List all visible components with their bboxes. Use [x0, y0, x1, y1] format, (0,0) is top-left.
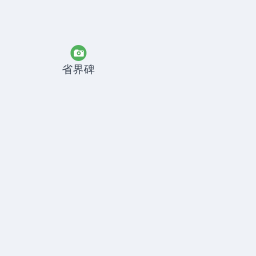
- button[interactable]: 省界碑: [62, 45, 95, 76]
- staticText: 省界碑: [62, 63, 95, 76]
